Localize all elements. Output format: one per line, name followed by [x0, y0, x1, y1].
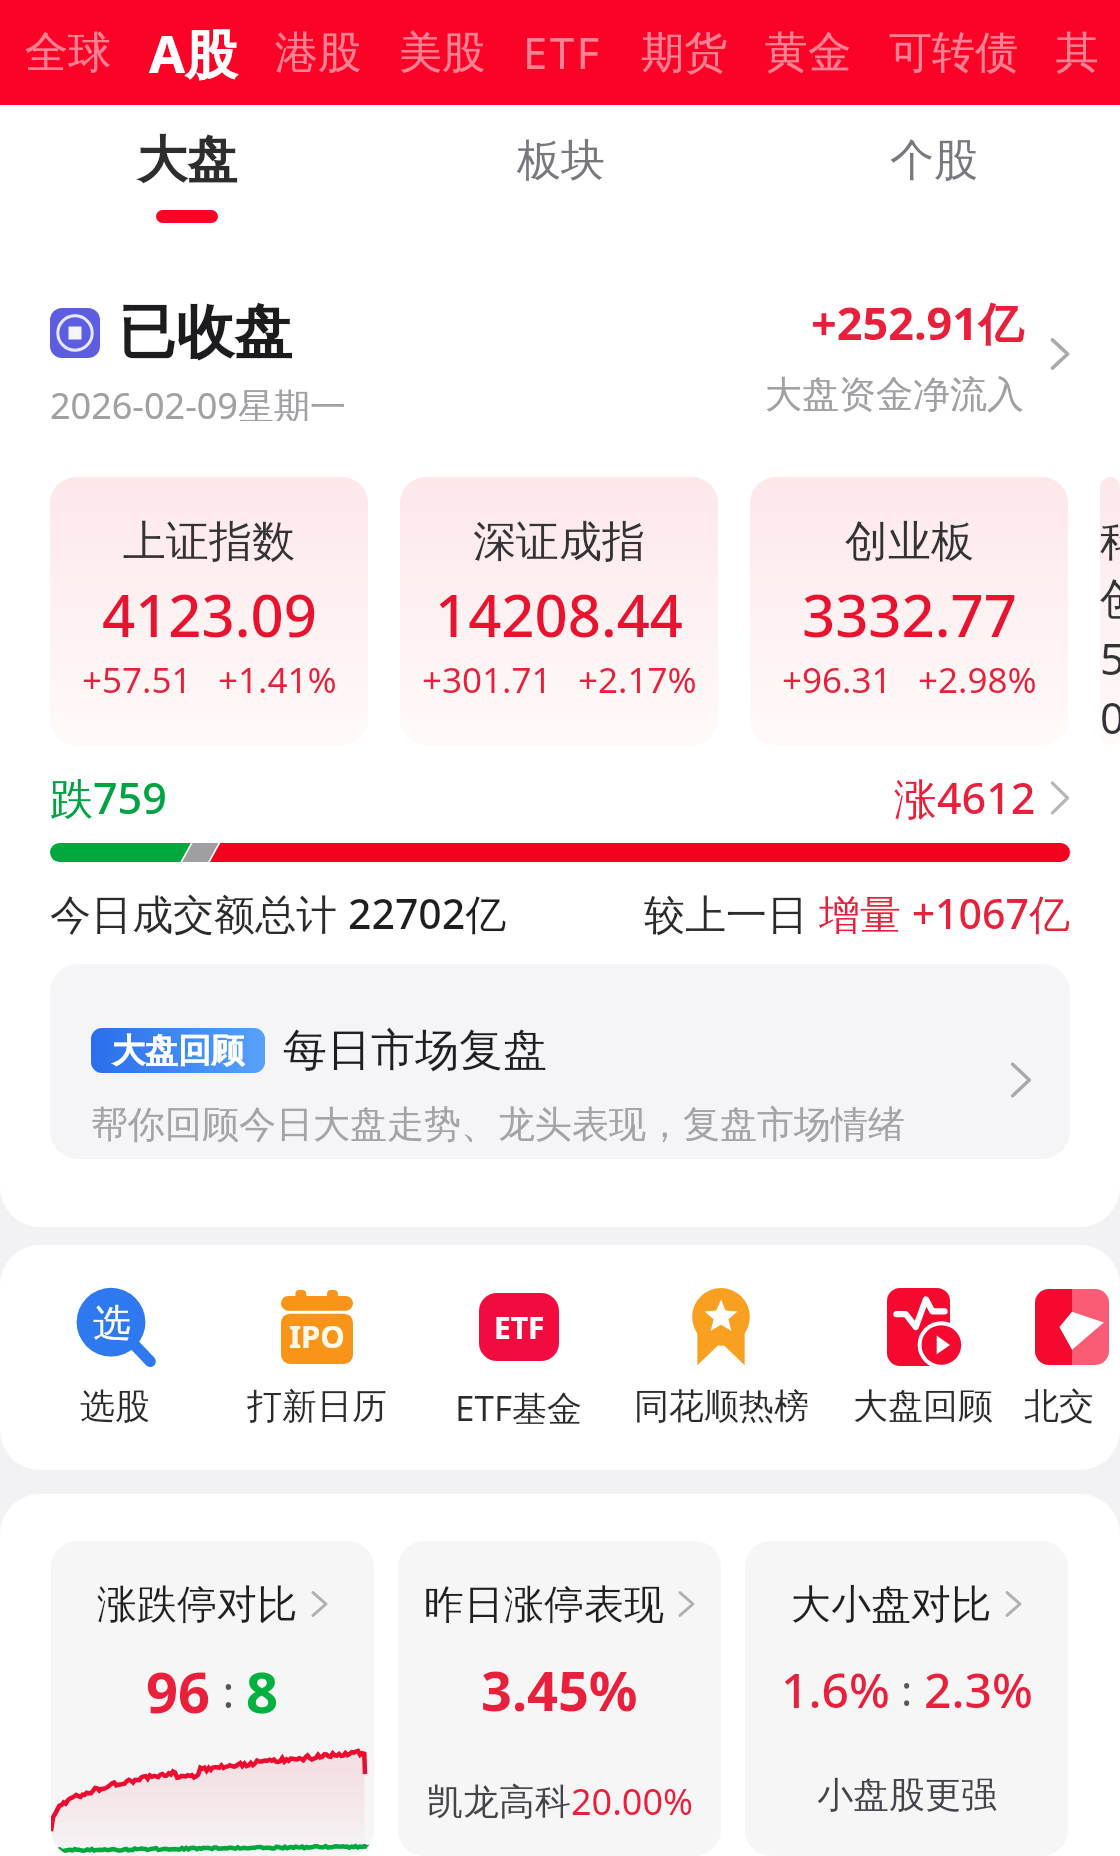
staticText: 8	[246, 1653, 279, 1729]
staticText: :	[890, 1661, 924, 1718]
button[interactable]: ETF	[504, 0, 622, 105]
staticText: IPO	[289, 1315, 345, 1357]
button[interactable]: 个股	[747, 105, 1120, 245]
button[interactable]: ETF	[418, 1287, 620, 1432]
staticText: 北交所	[1024, 1384, 1120, 1428]
staticText: 可转债	[889, 26, 1018, 80]
staticText: 已收盘	[118, 296, 292, 369]
staticText: 3332.77	[802, 575, 1017, 654]
staticText: 板块	[517, 133, 605, 188]
staticText: +2.17%	[578, 656, 697, 704]
staticText: 14208.44	[435, 575, 684, 654]
staticText: 大盘	[137, 129, 237, 192]
staticText: 上证指数	[123, 515, 295, 569]
staticText: 凯龙高科	[427, 1779, 571, 1824]
staticText: ETF	[494, 1307, 545, 1348]
staticText: +96.31	[782, 656, 892, 704]
staticText: +301.71	[422, 656, 552, 704]
staticText: 增量 +1067亿	[819, 885, 1070, 941]
staticText: A股	[149, 17, 237, 88]
staticText: 打新日历	[247, 1384, 387, 1428]
button[interactable]: 跌759	[0, 768, 1120, 862]
button[interactable]: 大小盘对比	[745, 1541, 1068, 1856]
staticText: 涨4612	[894, 768, 1036, 827]
button[interactable]: 北交所	[1024, 1287, 1120, 1428]
button[interactable]: 创业板	[750, 477, 1068, 745]
staticText: 每日市场复盘	[283, 1023, 547, 1078]
button[interactable]: 选	[14, 1287, 216, 1428]
button[interactable]: 已收盘	[0, 300, 1120, 425]
staticText: 个股	[890, 133, 978, 188]
button[interactable]: 昨日涨停表现	[398, 1541, 721, 1856]
button[interactable]: 深证成指	[400, 477, 718, 745]
staticText: 黄金	[765, 26, 851, 80]
staticText: 1.6%	[781, 1657, 890, 1722]
button[interactable]: 上证指数	[50, 477, 368, 745]
button[interactable]: 板块	[374, 105, 747, 245]
staticText: +2.98%	[918, 656, 1037, 704]
staticText: 20.00%	[571, 1777, 693, 1826]
button[interactable]: IPO	[216, 1287, 418, 1428]
staticText: +1.41%	[218, 656, 337, 704]
staticText: +57.51	[82, 656, 192, 704]
staticText: 4123.09	[102, 575, 317, 654]
button[interactable]: 港股	[256, 0, 380, 105]
staticText: 大盘回顾	[112, 1030, 244, 1072]
staticText: 美股	[399, 26, 485, 80]
staticText: 帮你回顾今日大盘走势、龙头表现，复盘市场情绪	[91, 1101, 905, 1148]
staticText: 科创50	[1100, 515, 1120, 745]
staticText: ETF基金	[455, 1384, 583, 1432]
staticText: 其他	[1056, 26, 1101, 80]
staticText: 2026-02-09星期一	[50, 381, 346, 421]
button[interactable]: 科创50	[1100, 477, 1120, 745]
staticText: 同花顺热榜	[634, 1384, 809, 1428]
button[interactable]: A股	[130, 0, 256, 105]
staticText: 跌759	[50, 768, 167, 827]
staticText: 昨日涨停表现	[424, 1579, 664, 1629]
button[interactable]: 同花顺热榜	[620, 1287, 822, 1428]
staticText: ETF	[523, 23, 603, 82]
staticText: 2.3%	[924, 1657, 1033, 1722]
button[interactable]: 其他	[1037, 0, 1120, 105]
staticText: 创业板	[845, 515, 974, 569]
staticText: 大盘回顾	[853, 1384, 993, 1428]
staticText: 港股	[275, 26, 361, 80]
staticText: 期货	[641, 26, 727, 80]
button[interactable]: 大盘回顾	[50, 964, 1070, 1159]
button[interactable]: 美股	[380, 0, 504, 105]
staticText: 大小盘对比	[791, 1579, 991, 1629]
staticText: 涨跌停对比	[97, 1579, 297, 1629]
staticText: 22702亿	[348, 885, 507, 941]
staticText: :	[211, 1661, 246, 1721]
button[interactable]: 大盘	[0, 105, 374, 245]
staticText: 选股	[80, 1384, 150, 1428]
button[interactable]: 可转债	[870, 0, 1037, 105]
staticText: 96	[146, 1653, 211, 1729]
staticText: +252.91亿	[811, 292, 1024, 353]
staticText: 今日成交额总计	[50, 885, 348, 941]
button[interactable]: 期货	[622, 0, 746, 105]
staticText: 全球	[25, 26, 111, 80]
staticText: 小盘股更强	[817, 1772, 997, 1817]
staticText: 选	[93, 1299, 131, 1347]
button[interactable]: 涨跌停对比	[51, 1541, 374, 1856]
staticText: 3.45%	[481, 1653, 638, 1727]
staticText: 较上一日	[644, 885, 819, 941]
button[interactable]: 黄金	[746, 0, 870, 105]
staticText: 深证成指	[473, 515, 645, 569]
button[interactable]: 大盘回顾	[822, 1287, 1024, 1428]
staticText: 大盘资金净流入	[765, 371, 1024, 417]
button[interactable]: 全球	[6, 0, 130, 105]
